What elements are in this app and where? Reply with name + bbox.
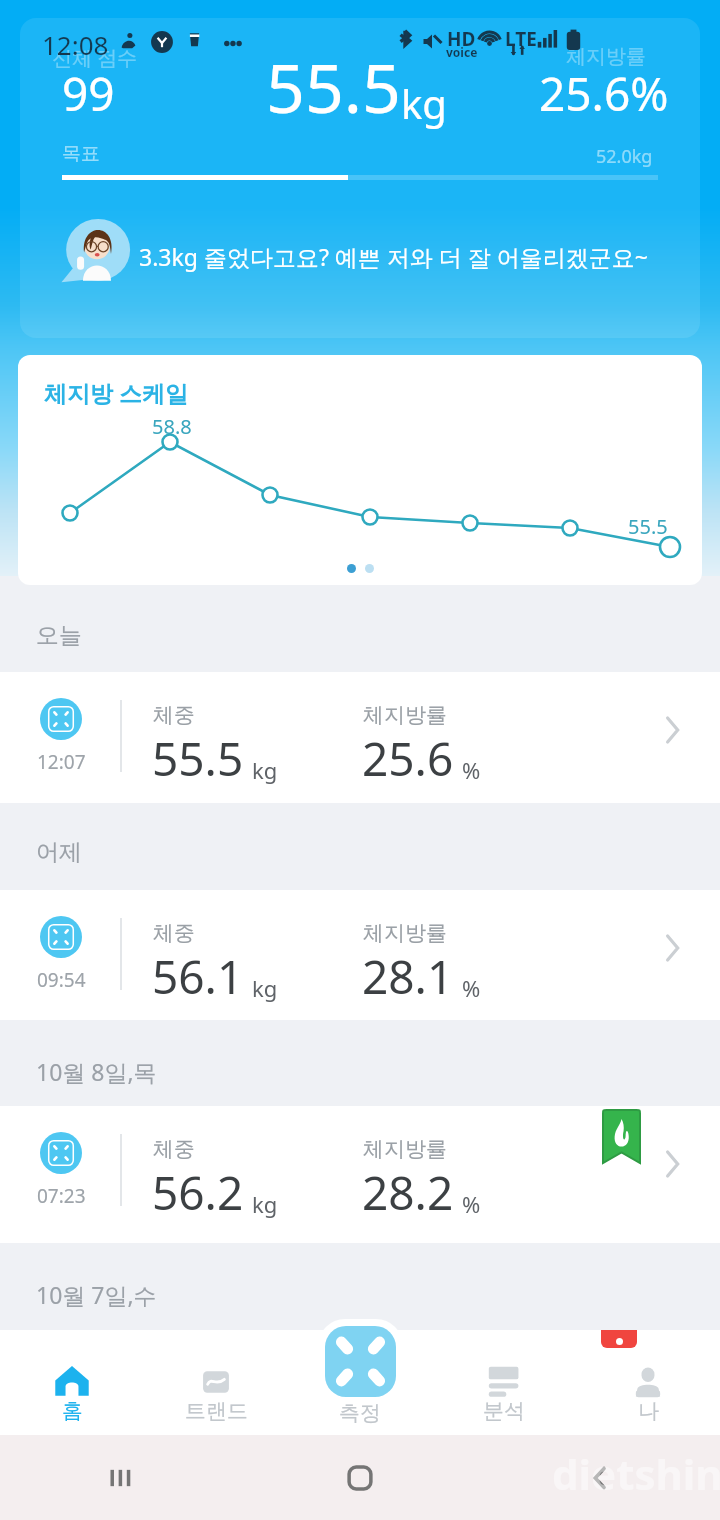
staticText: 58.8 (152, 413, 192, 440)
staticText: 10월 8일,목 (36, 1056, 157, 1087)
staticText: 25.6% (539, 62, 669, 125)
staticText: dietshin (552, 1445, 720, 1502)
staticText: 55.5 (266, 40, 401, 133)
staticText: 신체 점수 (52, 44, 138, 71)
staticText: 목표 (62, 142, 100, 166)
button[interactable]: 분석 (432, 1330, 576, 1435)
staticText: voice (446, 44, 478, 60)
button[interactable]: 트랜드 (144, 1330, 288, 1435)
staticText: kg (401, 76, 447, 130)
button[interactable]: Back (480, 1435, 720, 1520)
staticText: 체중 (153, 920, 195, 946)
staticText: 12:08 (42, 27, 109, 62)
staticText: 홈 (62, 1398, 83, 1424)
staticText: 오늘 (36, 621, 82, 650)
staticText: 56.1 (152, 945, 244, 1008)
staticText: 나 (638, 1398, 659, 1424)
staticText: 트랜드 (185, 1398, 248, 1424)
staticText: 12:07 (37, 749, 86, 775)
staticText: 체지방률 (363, 1136, 447, 1162)
staticText: 56.2 (152, 1161, 244, 1224)
staticText: 체중 (153, 702, 195, 728)
staticText: 55.5 (152, 727, 244, 790)
button[interactable]: 측정 (325, 1326, 396, 1397)
staticText: kg (252, 973, 278, 1003)
staticText: 체지방 스케일 (44, 377, 188, 408)
button[interactable]: 12:07 (0, 672, 720, 803)
button[interactable]: 체지방 스케일 (18, 355, 702, 585)
button[interactable]: 홈 (0, 1330, 144, 1435)
staticText: % (462, 755, 481, 785)
staticText: 체지방률 (363, 702, 447, 728)
staticText: 체지방률 (363, 920, 447, 946)
staticText: kg (252, 755, 278, 785)
button[interactable]: 측정 (288, 1330, 432, 1435)
button[interactable]: Recents (0, 1435, 240, 1520)
staticText: % (462, 973, 481, 1003)
staticText: 52.0kg (596, 144, 653, 169)
button[interactable]: 07:23 (0, 1106, 720, 1243)
staticText: LTE (505, 26, 537, 52)
staticText: % (462, 1189, 481, 1219)
staticText: 28.2 (362, 1161, 454, 1224)
staticText: 측정 (339, 1400, 381, 1426)
staticText: 분석 (483, 1398, 525, 1424)
staticText: 10월 7일,수 (36, 1279, 157, 1310)
staticText: 28.1 (362, 945, 454, 1008)
staticText: 07:23 (37, 1183, 86, 1209)
staticText: 25.6 (362, 727, 454, 790)
staticText: 체지방률 (566, 44, 646, 69)
staticText: 어제 (36, 838, 82, 867)
button[interactable]: 09:54 (0, 890, 720, 1020)
staticText: 3.3kg 줄었다고요? 예쁜 저와 더 잘 어울리겠군요~ (139, 241, 648, 272)
staticText: 99 (62, 62, 115, 125)
button[interactable]: Home (240, 1435, 480, 1520)
staticText: kg (252, 1189, 278, 1219)
button[interactable]: 나 (576, 1330, 720, 1435)
staticText: 체중 (153, 1136, 195, 1162)
staticText: 55.5 (628, 513, 668, 540)
staticText: HD (447, 26, 476, 52)
staticText: 09:54 (37, 967, 86, 993)
